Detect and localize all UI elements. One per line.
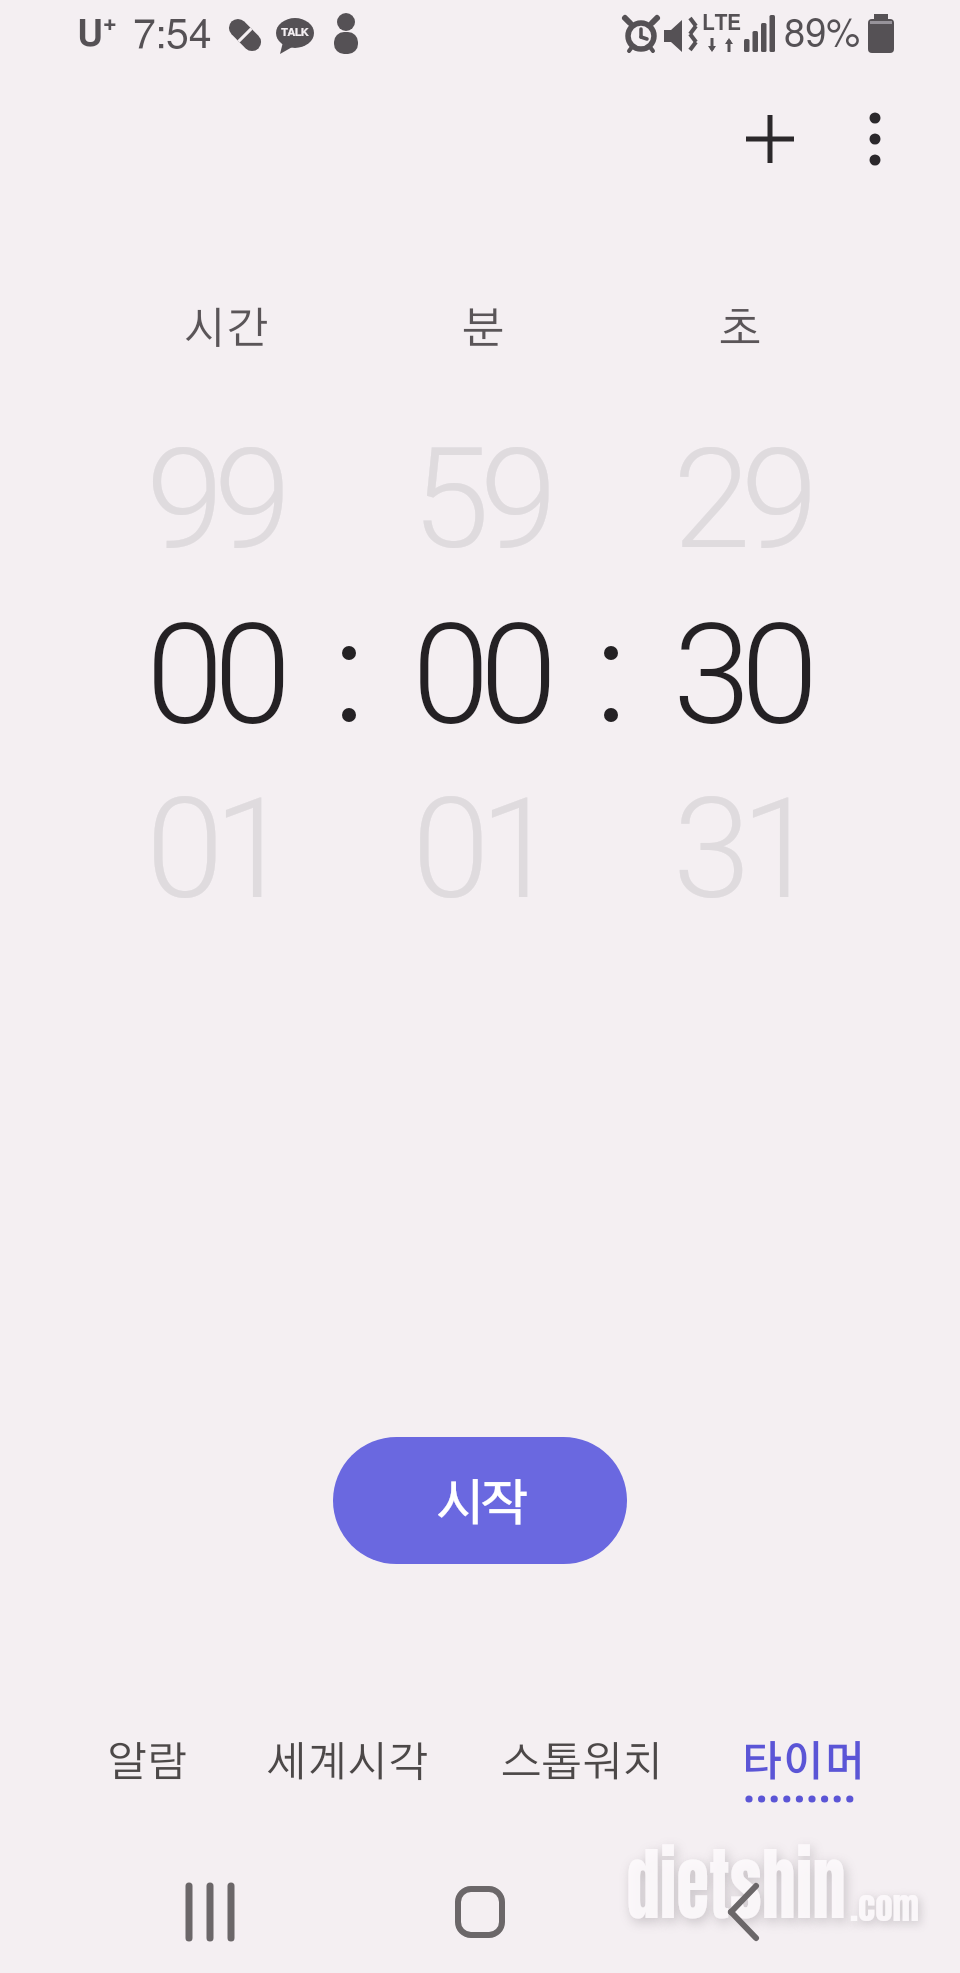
staticText: 스톱워치 xyxy=(501,1742,663,1784)
staticText: 99 xyxy=(146,417,282,581)
staticText: LTE xyxy=(702,13,741,34)
staticText: 타이머 xyxy=(741,1742,866,1784)
staticText: TALK xyxy=(281,27,309,38)
staticText: 01 xyxy=(146,767,282,931)
staticText: 29 xyxy=(673,417,809,581)
staticText: 7:54 xyxy=(133,15,212,56)
staticText: .com xyxy=(850,1880,920,1933)
staticText: 89% xyxy=(784,16,861,54)
staticText: 00 xyxy=(412,593,548,757)
staticText: 시간 xyxy=(184,308,269,352)
staticText: 00 xyxy=(146,593,282,757)
staticText: 01 xyxy=(412,767,548,931)
staticText: 31 xyxy=(673,767,809,931)
staticText: 59 xyxy=(412,417,548,581)
staticText: 분 xyxy=(462,308,505,352)
staticText: 알람 xyxy=(107,1742,188,1784)
staticText: dietshin xyxy=(626,1824,846,1944)
staticText: U⁺ xyxy=(77,17,117,53)
staticText: 세계시각 xyxy=(267,1742,429,1784)
staticText: 30 xyxy=(673,593,809,757)
staticText: 시작 xyxy=(436,1480,524,1530)
staticText: 초 xyxy=(719,308,762,352)
